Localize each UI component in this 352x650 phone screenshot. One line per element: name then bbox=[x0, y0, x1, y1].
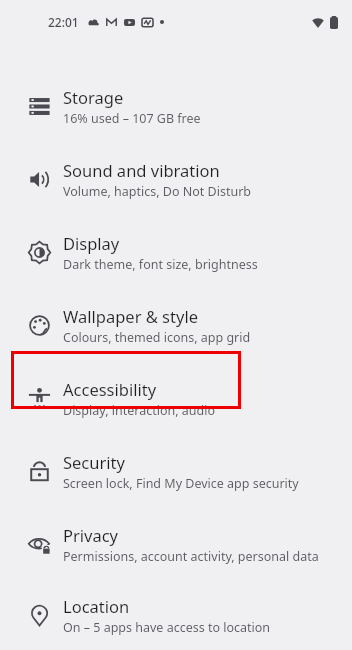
staticText: Storage bbox=[63, 86, 124, 108]
staticText: Wallpaper & style bbox=[63, 305, 198, 327]
staticText: Dark theme, font size, brightness bbox=[63, 256, 258, 273]
staticText: Volume, haptics, Do Not Disturb bbox=[63, 183, 252, 200]
staticText: Location bbox=[63, 595, 130, 617]
staticText: 22:01 bbox=[48, 14, 79, 30]
button[interactable]: Storage bbox=[0, 70, 352, 143]
staticText: Permissions, account activity, personal … bbox=[63, 548, 319, 565]
staticText: 16% used – 107 GB free bbox=[63, 110, 201, 127]
staticText: Accessibility bbox=[63, 378, 157, 400]
staticText: Display, interaction, audio bbox=[63, 402, 216, 419]
button[interactable]: Privacy bbox=[0, 508, 352, 581]
staticText: Security bbox=[63, 451, 125, 473]
staticText: On – 5 apps have access to location bbox=[63, 619, 271, 636]
staticText: Privacy bbox=[63, 524, 119, 546]
staticText: Display bbox=[63, 232, 120, 254]
button[interactable]: Sound and vibration bbox=[0, 143, 352, 216]
button[interactable]: Wallpaper & style bbox=[0, 289, 352, 362]
button[interactable]: Accessibility bbox=[0, 362, 352, 435]
staticText: Colours, themed icons, app grid bbox=[63, 329, 251, 346]
staticText: Screen lock, Find My Device app security bbox=[63, 475, 299, 492]
button[interactable]: Location bbox=[0, 581, 352, 650]
button[interactable]: Display bbox=[0, 216, 352, 289]
button[interactable]: Security bbox=[0, 435, 352, 508]
staticText: Sound and vibration bbox=[63, 159, 220, 181]
